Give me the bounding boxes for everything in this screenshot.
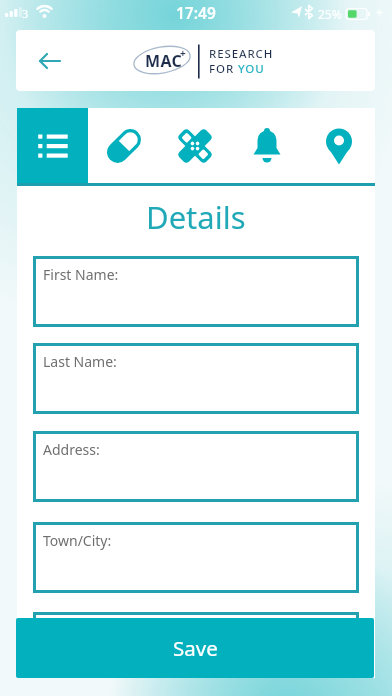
button[interactable]: [159, 108, 231, 183]
button[interactable]: [88, 108, 159, 183]
button[interactable]: [231, 108, 303, 183]
button[interactable]: First Name:: [33, 256, 359, 327]
staticText: Last Name:: [43, 352, 117, 371]
staticText: Details: [146, 196, 246, 238]
button[interactable]: Save: [16, 618, 374, 678]
button[interactable]: Town/City:: [33, 522, 359, 593]
button[interactable]: Last Name:: [33, 343, 359, 414]
button[interactable]: [17, 108, 88, 183]
staticText: 25%: [318, 6, 342, 22]
staticText: Address:: [43, 440, 100, 459]
staticText: FOR YOU: [209, 61, 265, 77]
button[interactable]: [303, 108, 375, 183]
staticText: First Name:: [43, 265, 119, 284]
button[interactable]: [33, 612, 359, 662]
button[interactable]: [32, 43, 68, 79]
staticText: 17:49: [176, 2, 216, 23]
staticText: Save: [173, 634, 218, 662]
button[interactable]: Address:: [33, 431, 359, 502]
staticText: RESEARCH: [209, 46, 274, 62]
staticText: MAC: [145, 50, 183, 72]
staticText: 3: [22, 6, 29, 21]
staticText: Town/City:: [43, 531, 112, 550]
staticText: +: [180, 46, 186, 60]
